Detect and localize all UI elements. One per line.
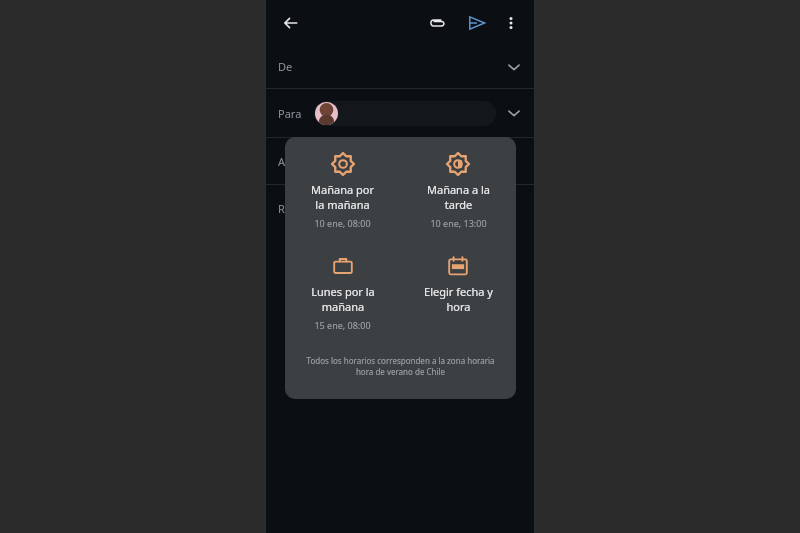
staticText: Elegir fecha y hora <box>424 284 493 314</box>
staticText: Redactar correo <box>278 201 361 216</box>
staticText: Mañana por la mañana <box>311 182 374 212</box>
button[interactable]: Mañana por la mañana <box>285 145 400 237</box>
button[interactable]: Redactar correo <box>266 185 534 231</box>
button[interactable]: Attach file <box>420 6 454 40</box>
button[interactable]: Mañana a la tarde <box>400 145 516 237</box>
staticText: Mañana a la tarde <box>427 182 490 212</box>
staticText: 10 ene, 08:00 <box>314 217 371 229</box>
staticText: Lunes por la mañana <box>311 284 375 314</box>
staticText: 15 ene, 08:00 <box>314 319 371 331</box>
button[interactable]: Elegir fecha y hora <box>400 247 516 322</box>
button[interactable] <box>314 101 496 126</box>
staticText: Para <box>278 106 302 121</box>
button[interactable]: Asunto <box>266 138 534 184</box>
button[interactable]: Lunes por la mañana <box>285 247 400 339</box>
staticText: Todos los horarios corresponden a la zon… <box>288 355 513 377</box>
button[interactable]: Back <box>274 6 308 40</box>
staticText: 10 ene, 13:00 <box>430 217 487 229</box>
button[interactable]: De <box>266 45 534 88</box>
staticText: De <box>278 59 293 74</box>
button[interactable]: Send <box>460 6 494 40</box>
button[interactable]: More options <box>494 6 528 40</box>
staticText: Asunto <box>278 154 315 169</box>
button[interactable]: Para <box>266 89 534 137</box>
